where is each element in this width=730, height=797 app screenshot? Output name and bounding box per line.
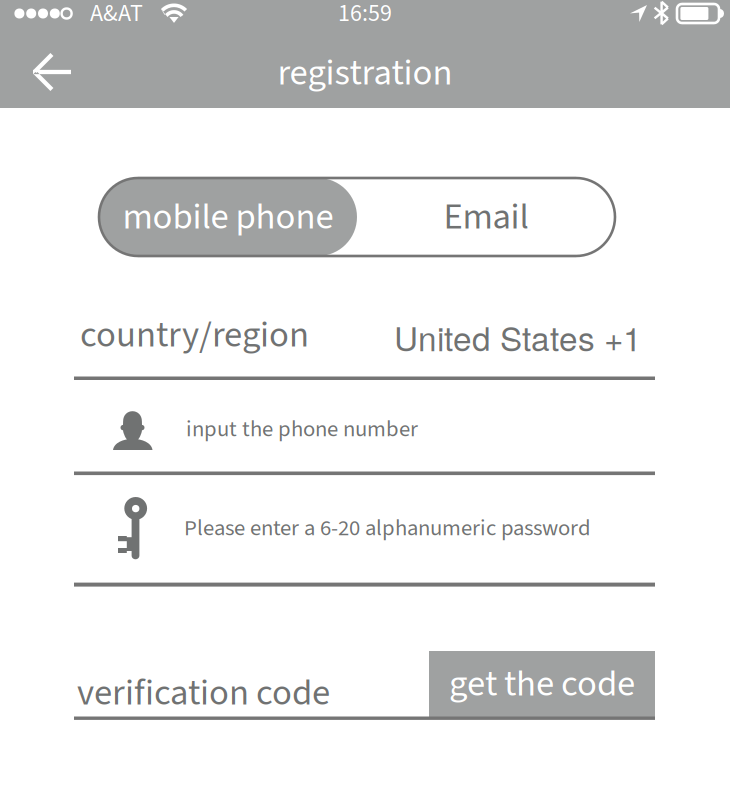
staticText: get the code [449, 658, 635, 710]
staticText: input the phone number [186, 413, 418, 445]
staticText: A&AT [90, 0, 143, 31]
staticText: mobile phone [122, 191, 333, 243]
button[interactable]: get the code [429, 651, 655, 717]
staticText: registration [277, 47, 452, 99]
staticText: Email [443, 191, 528, 243]
button[interactable]: Email [357, 178, 615, 256]
staticText: United States +1 [394, 313, 642, 361]
staticText: verification code [77, 667, 330, 719]
button[interactable]: mobile phone [99, 178, 357, 256]
staticText: 16:59 [338, 0, 392, 31]
staticText: country/region [80, 309, 309, 361]
staticText: Please enter a 6-20 alphanumeric passwor… [184, 512, 591, 544]
button[interactable]: Back [0, 38, 94, 108]
